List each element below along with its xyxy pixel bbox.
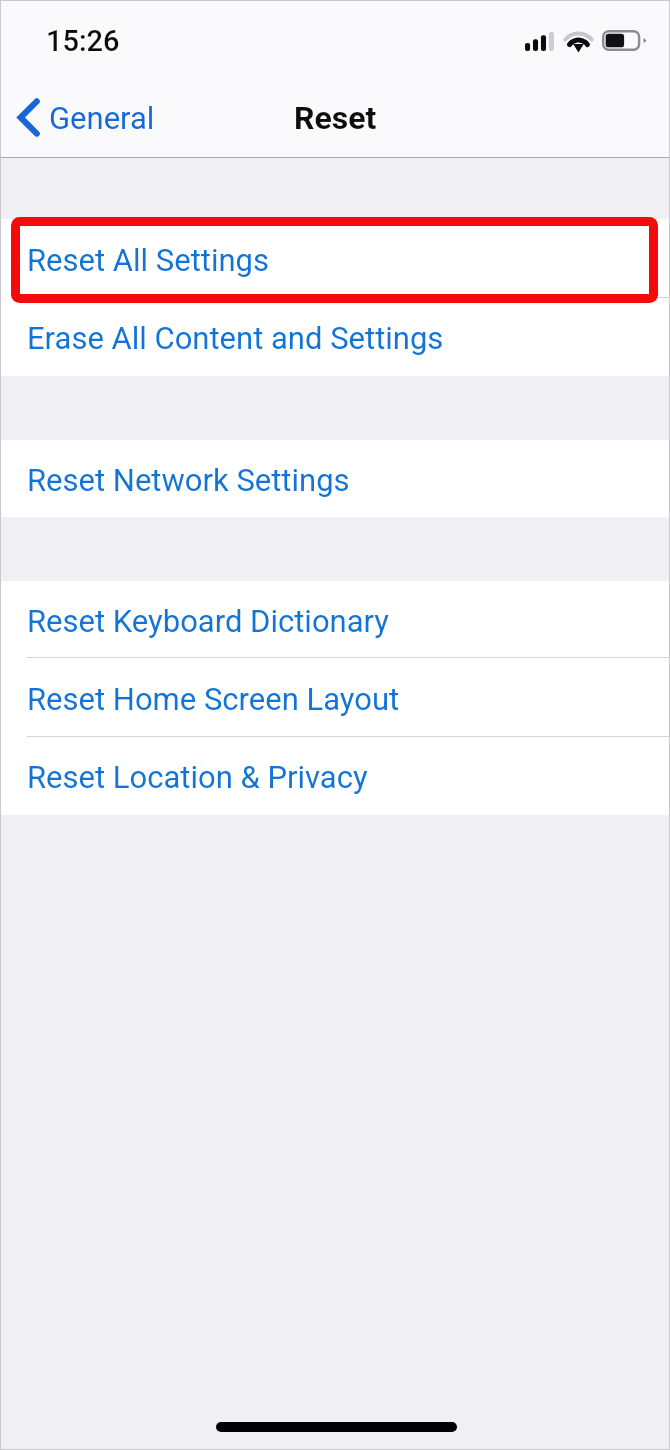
button[interactable]: Back to General [0,87,169,148]
button[interactable]: Reset Home Screen Layout [0,658,670,737]
button[interactable]: Reset All Settings [0,219,670,298]
staticText: Reset [294,99,377,137]
staticText: Reset Home Screen Layout [27,681,400,717]
button[interactable]: Reset Location & Privacy [0,737,670,815]
button[interactable]: Erase All Content and Settings [0,298,670,376]
button[interactable]: Reset Keyboard Dictionary [0,581,670,658]
staticText: General [49,100,155,136]
staticText: Reset Keyboard Dictionary [27,603,390,639]
staticText: Reset Network Settings [27,462,350,498]
staticText: Reset Location & Privacy [27,759,368,795]
staticText: Reset All Settings [27,242,269,278]
staticText: Erase All Content and Settings [27,320,444,356]
button[interactable]: Reset Network Settings [0,440,670,517]
staticText: 15:26 [46,24,120,58]
